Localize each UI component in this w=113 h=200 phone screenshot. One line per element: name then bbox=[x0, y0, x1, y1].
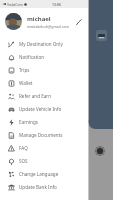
staticText: michael bbox=[27, 15, 51, 23]
staticText: Refer and Earn bbox=[19, 93, 52, 99]
button[interactable]: SOS bbox=[0, 154, 88, 167]
button[interactable]: Refer and Earn bbox=[0, 89, 88, 102]
button[interactable]: Edit profile bbox=[74, 17, 84, 27]
button[interactable]: FAQ bbox=[0, 141, 88, 154]
button[interactable]: My Destination Only bbox=[0, 37, 88, 50]
button[interactable]: Trips bbox=[0, 63, 88, 76]
staticText: Trips bbox=[19, 67, 30, 73]
button[interactable]: My location bbox=[95, 146, 105, 156]
button[interactable]: Change Language bbox=[0, 167, 88, 180]
button[interactable]: Manage Documents bbox=[0, 128, 88, 141]
button[interactable]: michael bbox=[0, 8, 88, 35]
staticText: Update Bank Info bbox=[19, 184, 57, 190]
button[interactable]: Update Vehicle Info bbox=[0, 102, 88, 115]
staticText: Change Language bbox=[19, 171, 59, 177]
staticText: 13:06 bbox=[52, 2, 61, 7]
button[interactable]: Notification bbox=[0, 50, 88, 63]
staticText: SOS bbox=[19, 158, 28, 164]
staticText: My Destination Only bbox=[19, 41, 63, 47]
staticText: FAQ bbox=[19, 145, 28, 151]
button[interactable]: Earnings bbox=[0, 115, 88, 128]
staticText: mwitakebuh@gmail.com bbox=[27, 24, 69, 29]
staticText: Manage Documents bbox=[19, 132, 63, 138]
button[interactable]: Wallet bbox=[0, 76, 88, 89]
button[interactable]: Update Bank Info bbox=[0, 180, 88, 193]
button[interactable]: Vehicle card bbox=[96, 30, 107, 41]
staticText: Update Vehicle Info bbox=[19, 106, 62, 112]
staticText: Notification bbox=[19, 54, 45, 60]
staticText: VodaCom bbox=[7, 2, 23, 7]
staticText: Earnings bbox=[19, 119, 38, 125]
staticText: Wallet bbox=[19, 80, 33, 86]
